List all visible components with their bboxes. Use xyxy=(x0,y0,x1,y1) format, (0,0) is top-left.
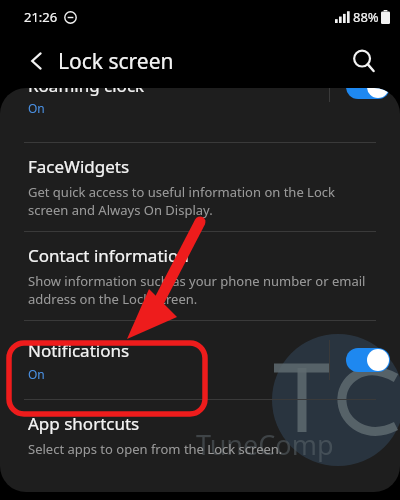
button[interactable]: App shortcuts xyxy=(0,400,400,470)
staticText: On xyxy=(28,100,45,116)
staticText: Notifications xyxy=(28,339,130,362)
button[interactable]: Toggle on xyxy=(346,88,390,99)
staticText: FaceWidgets xyxy=(28,155,130,178)
button[interactable]: Contact information xyxy=(0,232,400,320)
staticText: 88% xyxy=(353,8,379,26)
staticText: Roaming clock xyxy=(28,88,145,97)
staticText: 21:26 xyxy=(24,8,58,26)
staticText: On xyxy=(28,366,45,382)
staticText: Contact information xyxy=(28,244,189,267)
staticText: Select apps to open from the Lock screen… xyxy=(28,440,283,458)
staticText: TuneComp xyxy=(196,426,334,463)
button[interactable]: Roaming clock xyxy=(0,88,400,142)
button[interactable]: Toggle on xyxy=(346,348,390,372)
button[interactable]: Back xyxy=(16,40,58,82)
staticText: Show information such as your phone numb… xyxy=(28,272,366,308)
button[interactable]: FaceWidgets xyxy=(0,143,400,231)
button[interactable]: Notifications xyxy=(0,321,400,399)
staticText: App shortcuts xyxy=(28,412,140,435)
staticText: Lock screen xyxy=(58,47,174,76)
staticText: Get quick access to useful information o… xyxy=(28,183,335,219)
button[interactable]: Search xyxy=(342,39,386,83)
